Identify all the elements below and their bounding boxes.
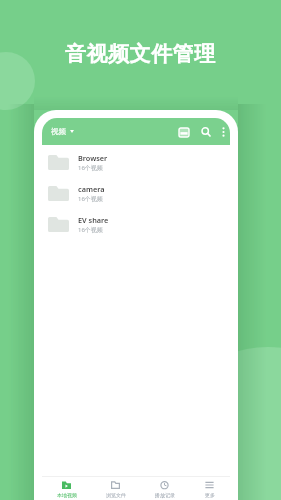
button[interactable]: 更多 — [189, 477, 230, 500]
staticText: 16个视频 — [78, 195, 103, 203]
staticText: 更多 — [205, 492, 215, 498]
button[interactable]: More options — [217, 122, 230, 142]
staticText: EV share — [78, 215, 109, 225]
staticText: 16个视频 — [78, 226, 103, 234]
staticText: 音视频文件管理 — [65, 41, 216, 67]
staticText: camera — [78, 184, 105, 194]
staticText: 浏览文件 — [106, 492, 126, 498]
button[interactable]: 本地视频 — [42, 477, 91, 500]
button[interactable]: 播放记录 — [140, 477, 189, 500]
button[interactable]: Switch view — [173, 121, 195, 143]
button[interactable]: EV share — [42, 209, 230, 240]
button[interactable]: 视频 — [42, 124, 80, 139]
staticText: 16个视频 — [78, 164, 103, 172]
staticText: 播放记录 — [155, 492, 175, 498]
button[interactable]: 浏览文件 — [91, 477, 140, 500]
staticText: 本地视频 — [57, 492, 77, 498]
button[interactable]: camera — [42, 178, 230, 209]
staticText: 视频 — [51, 127, 66, 136]
button[interactable]: Browser — [42, 147, 230, 178]
button[interactable]: Search — [195, 121, 217, 143]
staticText: Browser — [78, 153, 108, 163]
